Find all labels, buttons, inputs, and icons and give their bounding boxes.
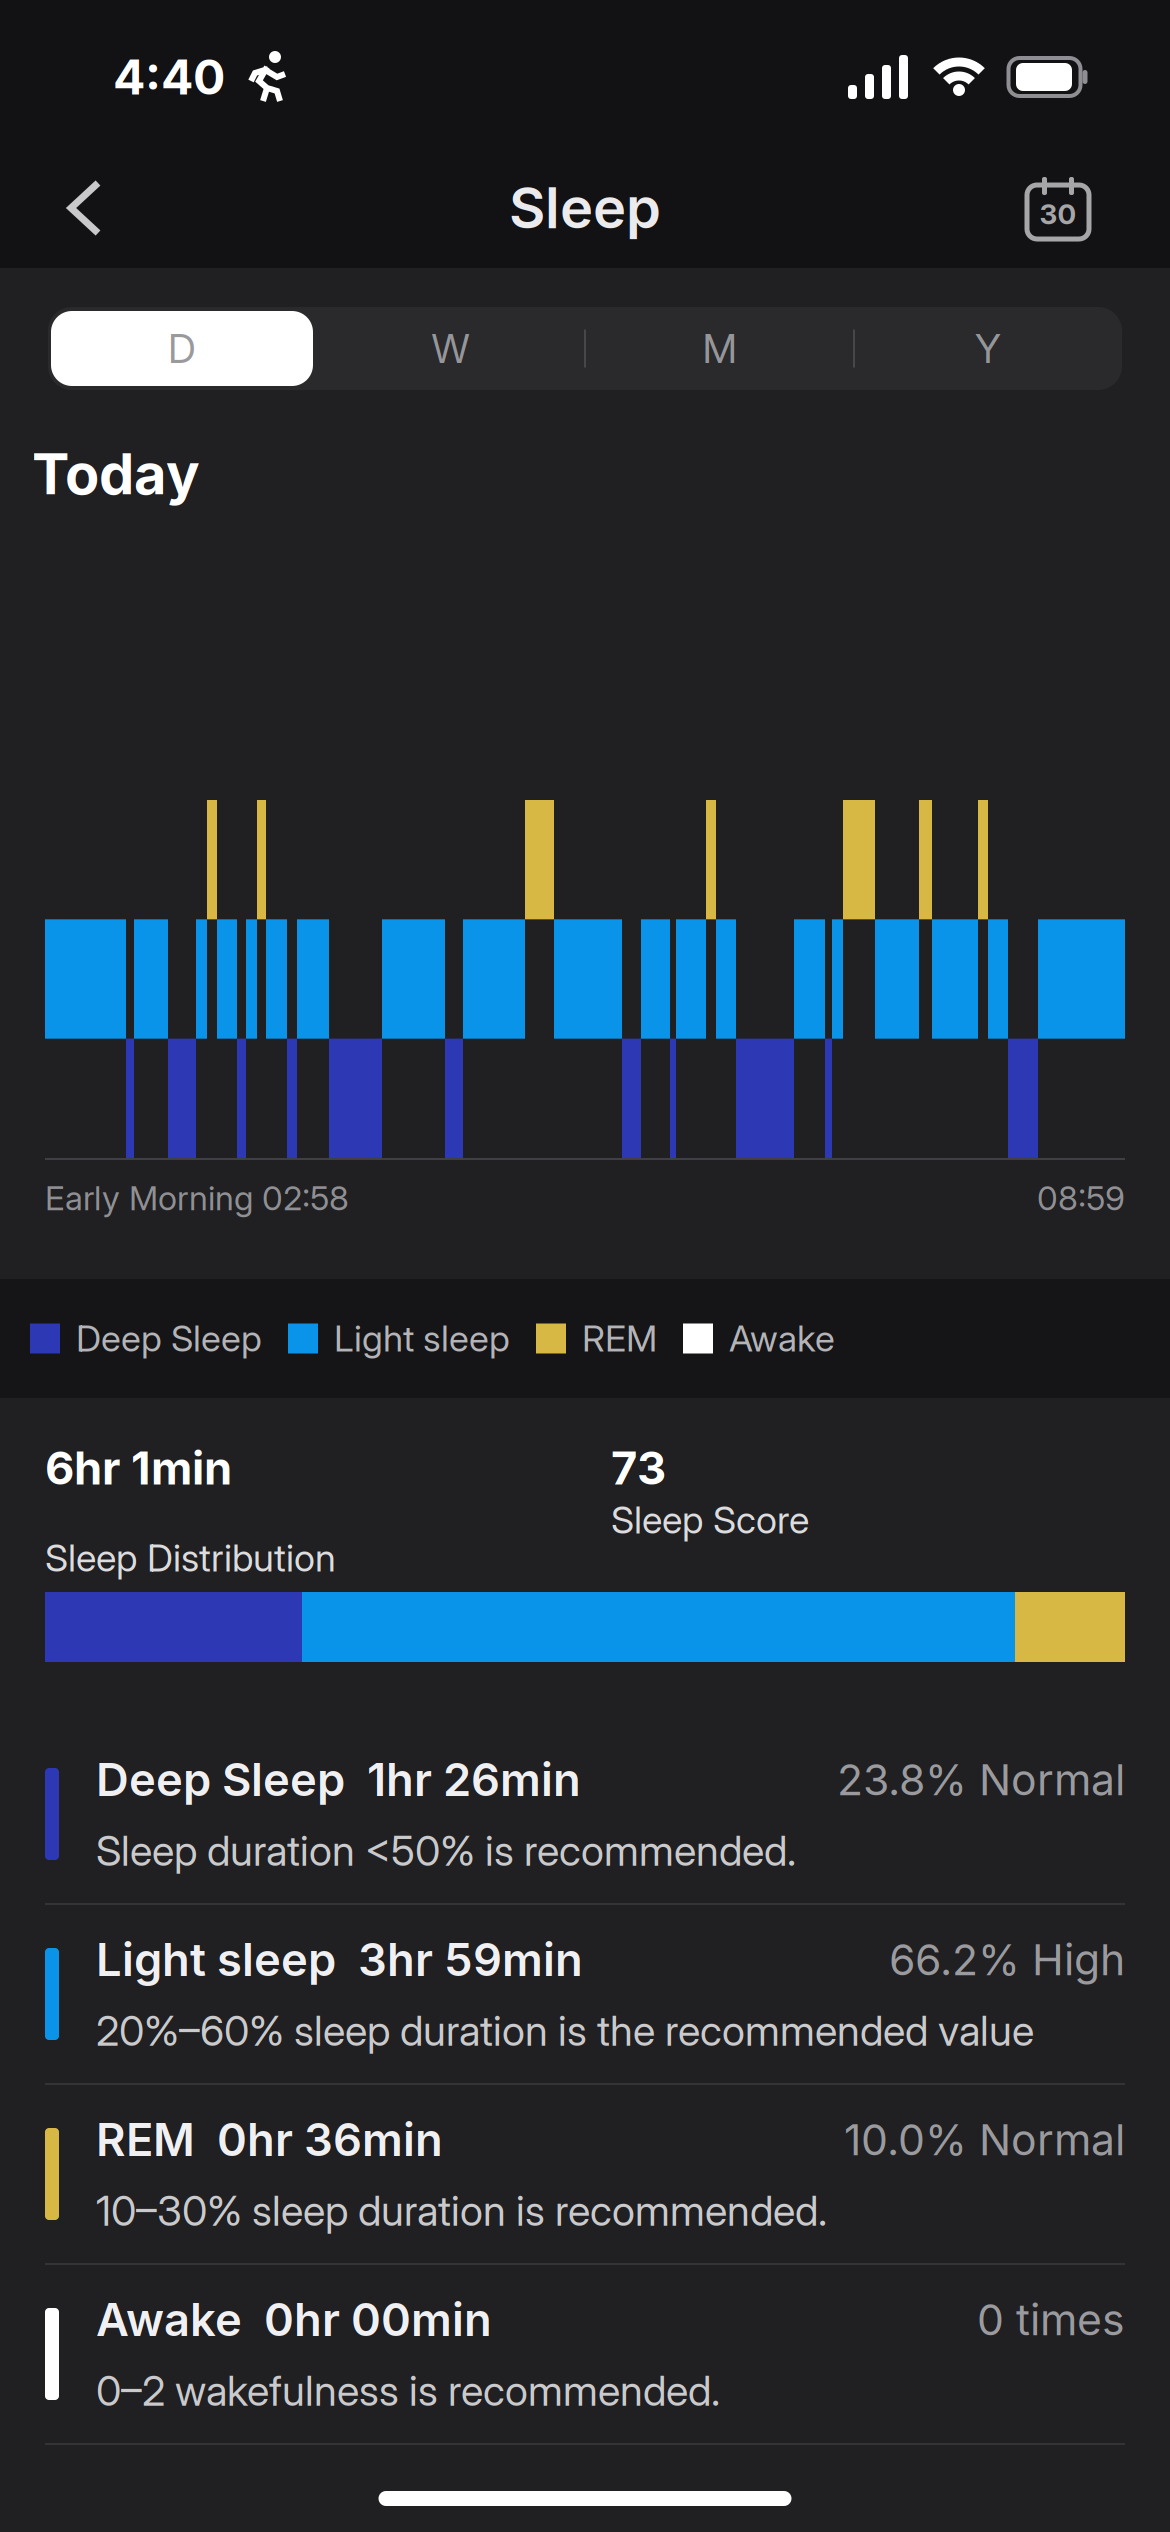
staticText: 08:59 bbox=[1037, 1178, 1125, 1218]
staticText: Awake bbox=[729, 1317, 835, 1360]
staticText: M bbox=[702, 325, 736, 372]
button[interactable]: Back bbox=[0, 181, 134, 235]
staticText: Early Morning 02:58 bbox=[45, 1178, 349, 1218]
staticText: Y bbox=[975, 325, 1001, 372]
staticText: 66.2% High bbox=[889, 1934, 1125, 1985]
staticText: 10–30% sleep duration is recommended. bbox=[96, 2186, 827, 2235]
staticText: D bbox=[168, 325, 196, 372]
staticText: Sleep Score bbox=[611, 1498, 809, 1542]
staticText: 10.0% Normal bbox=[844, 2114, 1125, 2165]
button[interactable]: M bbox=[585, 307, 854, 390]
staticText: Deep Sleep bbox=[76, 1317, 262, 1360]
staticText: 4:40 bbox=[113, 49, 225, 105]
staticText: REM 0hr 36min bbox=[96, 2113, 443, 2166]
staticText: Today bbox=[32, 441, 200, 507]
staticText: 30 bbox=[1039, 197, 1076, 230]
staticText: Awake 0hr 00min bbox=[96, 2293, 492, 2346]
button[interactable]: D bbox=[48, 307, 316, 390]
button[interactable]: Y bbox=[854, 307, 1122, 390]
staticText: W bbox=[431, 325, 469, 372]
staticText: Sleep Distribution bbox=[45, 1536, 336, 1580]
staticText: 73 bbox=[611, 1441, 666, 1495]
staticText: 6hr 1min bbox=[45, 1441, 232, 1495]
staticText: Sleep bbox=[509, 175, 661, 241]
staticText: Light sleep 3hr 59min bbox=[96, 1933, 583, 1986]
button[interactable]: W bbox=[316, 307, 585, 390]
staticText: Sleep duration <50% is recommended. bbox=[96, 1826, 796, 1875]
staticText: REM bbox=[582, 1317, 657, 1360]
staticText: Deep Sleep 1hr 26min bbox=[96, 1753, 581, 1806]
button[interactable]: Calendar bbox=[1026, 177, 1170, 239]
staticText: 20%–60% sleep duration is the recommende… bbox=[96, 2006, 1034, 2055]
staticText: 23.8% Normal bbox=[837, 1754, 1125, 1805]
staticText: 0 times bbox=[977, 2294, 1125, 2345]
staticText: Light sleep bbox=[334, 1317, 510, 1360]
staticText: 0–2 wakefulness is recommended. bbox=[96, 2366, 720, 2415]
